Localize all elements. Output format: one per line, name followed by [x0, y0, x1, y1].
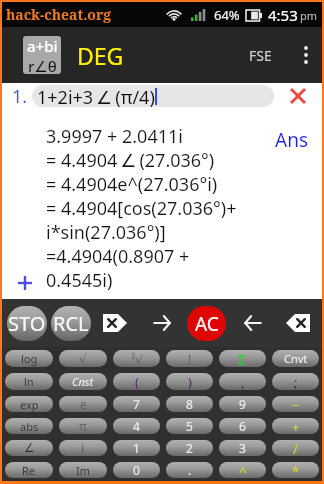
staticText: Cnvt [284, 351, 308, 366]
staticText: , [241, 373, 245, 390]
button[interactable]: , [219, 373, 266, 390]
button[interactable]: Im [59, 462, 107, 478]
button[interactable]: 7 [113, 396, 160, 412]
staticText: Im [76, 463, 91, 478]
button[interactable]: 2 [166, 440, 213, 456]
staticText: 7 [133, 396, 140, 412]
button[interactable]: abs [5, 418, 53, 434]
button[interactable]: ln [5, 373, 53, 390]
button[interactable]: DEG [77, 40, 124, 71]
button[interactable]: − [272, 396, 319, 412]
button[interactable]: e [59, 396, 107, 412]
button[interactable]: log [5, 350, 53, 367]
staticText: 4 [133, 418, 140, 434]
button[interactable]: More options [290, 27, 322, 83]
button[interactable]: Move cursor left [241, 307, 265, 339]
button[interactable]: Delete [283, 307, 313, 339]
staticText: √ [79, 352, 87, 366]
button[interactable]: + [272, 418, 319, 434]
staticText: ) [188, 373, 192, 390]
staticText: i [81, 440, 85, 456]
button[interactable]: 1+2i+3 ∠ (π/4) [32, 85, 274, 107]
button[interactable]: 4 [113, 418, 160, 434]
staticText: * [292, 462, 300, 478]
staticText: 3.9997 + 2.0411i [46, 124, 183, 148]
button[interactable]: FSE [249, 46, 272, 65]
button[interactable]: ( [113, 373, 160, 390]
button[interactable]: RCL [51, 306, 91, 341]
button[interactable]: Move cursor right [150, 307, 174, 339]
staticText: hack-cheat.org [6, 5, 112, 24]
button[interactable]: Ans [275, 127, 308, 153]
staticText: AC [195, 311, 219, 337]
button[interactable]: Σ [219, 350, 266, 367]
staticText: Σ [238, 350, 247, 367]
staticText: 1 [133, 440, 140, 456]
staticText: ln [24, 374, 34, 389]
button[interactable]: ; [272, 373, 319, 390]
button[interactable]: ^ [219, 462, 266, 478]
button[interactable]: Cnst [59, 373, 107, 390]
staticText: − [292, 396, 300, 412]
staticText: log [21, 351, 38, 366]
staticText: 2 [186, 440, 193, 456]
button[interactable]: 3 [219, 440, 266, 456]
button[interactable]: exp [5, 396, 53, 412]
button[interactable]: 1 [113, 440, 160, 456]
staticText: r∠θ [28, 56, 57, 74]
button[interactable]: * [272, 462, 319, 478]
button[interactable]: π [59, 418, 107, 434]
button[interactable]: Cnvt [272, 350, 319, 367]
staticText: ^ [239, 462, 247, 478]
staticText: = 4.4904e^(27.036°i) [46, 172, 218, 196]
staticText: Re [22, 463, 36, 478]
staticText: =4.4904(0.8907 + [46, 244, 190, 268]
staticText: = 4.4904 ∠ (27.036°) [46, 148, 215, 172]
staticText: 64% [214, 6, 240, 24]
staticText: 1. [12, 84, 28, 109]
staticText: 4:53 [268, 5, 298, 25]
staticText: 0 [133, 462, 140, 478]
button[interactable]: . [166, 462, 213, 478]
staticText: 1+2i+3 ∠ (π/4) [37, 85, 155, 107]
button[interactable]: ! [166, 350, 213, 367]
button[interactable]: 8 [166, 396, 213, 412]
staticText: abs [20, 419, 39, 434]
button[interactable]: a+bi [23, 36, 61, 74]
staticText: 6 [239, 418, 246, 434]
staticText: ∠ [24, 441, 35, 455]
staticText: RCL [53, 310, 89, 337]
button[interactable]: Re [5, 462, 53, 478]
button[interactable]: / [272, 440, 319, 456]
button[interactable]: ³√ [113, 350, 160, 367]
staticText: exp [20, 397, 39, 412]
staticText: STO [8, 310, 46, 337]
button[interactable]: 0 [113, 462, 160, 478]
staticText: ( [135, 373, 139, 390]
button[interactable]: 6 [219, 418, 266, 434]
staticText: ! [188, 351, 192, 367]
button[interactable]: Clear expression [283, 83, 313, 109]
staticText: / [293, 440, 298, 456]
button[interactable]: √ [59, 350, 107, 367]
staticText: a+bi [27, 36, 58, 56]
staticText: pm [300, 8, 318, 23]
button[interactable]: 5 [166, 418, 213, 434]
staticText: + [292, 418, 300, 434]
button[interactable]: AC [187, 306, 226, 341]
staticText: e [80, 396, 87, 412]
button[interactable]: i [59, 440, 107, 456]
button[interactable]: STO [7, 306, 47, 341]
staticText: . [188, 462, 192, 478]
button[interactable]: ∠ [5, 440, 53, 456]
button[interactable]: ) [166, 373, 213, 390]
staticText: ³√ [131, 351, 143, 367]
staticText: i*sin(27.036°)] [46, 220, 166, 244]
button[interactable]: Backspace [100, 307, 130, 339]
staticText: 5 [186, 418, 193, 434]
button[interactable]: 9 [219, 396, 266, 412]
staticText: 3 [239, 440, 246, 456]
staticText: π [79, 418, 87, 434]
staticText: ; [294, 373, 298, 390]
staticText: = 4.4904[cos(27.036°)+ [46, 196, 237, 220]
